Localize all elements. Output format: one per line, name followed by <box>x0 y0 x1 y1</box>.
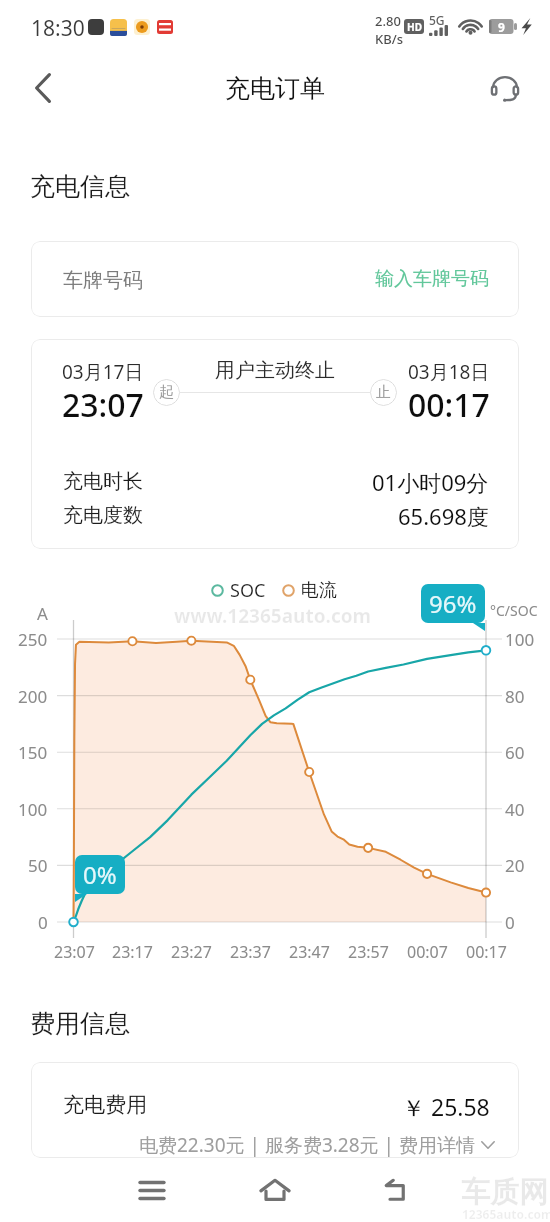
staticText: 充电费用 <box>63 1092 147 1118</box>
staticText: ￥ 25.58 <box>402 1091 490 1122</box>
staticText: 电费22.30元 | 服务费3.28元 | 费用详情 <box>139 1132 475 1158</box>
button[interactable]: Home <box>247 1162 303 1218</box>
staticText: 96% <box>429 587 477 620</box>
staticText: 01小时09分 <box>372 467 489 497</box>
staticText: SOC <box>230 578 266 602</box>
staticText: 0% <box>83 858 117 891</box>
staticText: 充电订单 <box>225 73 325 104</box>
staticText: 100 <box>505 628 535 651</box>
staticText: 23:07 <box>54 941 95 963</box>
staticText: 5G <box>429 12 445 28</box>
staticText: 23:37 <box>230 941 271 963</box>
staticText: 50 <box>28 854 48 877</box>
staticText: 电流 <box>301 579 337 602</box>
staticText: °C/SOC <box>490 601 538 620</box>
button[interactable]: 车牌号码 <box>31 241 519 317</box>
staticText: HD <box>407 20 422 34</box>
staticText: 250 <box>18 628 48 651</box>
staticText: 00:17 <box>408 383 490 427</box>
staticText: 23:47 <box>289 941 330 963</box>
staticText: 150 <box>18 741 48 764</box>
staticText: 00:17 <box>466 941 507 963</box>
staticText: KB/s <box>375 30 404 48</box>
staticText: 9 <box>498 19 505 34</box>
button[interactable]: Recent apps <box>124 1162 180 1218</box>
staticText: 03月17日 <box>62 359 144 385</box>
staticText: 0 <box>505 911 515 934</box>
staticText: 40 <box>505 798 525 821</box>
staticText: 200 <box>18 685 48 708</box>
button[interactable]: Back <box>369 1162 425 1218</box>
staticText: 23:57 <box>348 941 389 963</box>
staticText: 23:17 <box>112 941 153 963</box>
button[interactable]: Customer service <box>482 65 528 111</box>
staticText: 起 <box>159 383 174 402</box>
staticText: 23:27 <box>171 941 212 963</box>
button[interactable]: Back <box>20 65 66 111</box>
staticText: A <box>37 602 48 625</box>
staticText: 03月18日 <box>408 359 490 385</box>
staticText: 80 <box>505 685 525 708</box>
staticText: 100 <box>18 798 48 821</box>
staticText: 65.698度 <box>398 501 489 531</box>
staticText: 2.80 <box>375 12 401 30</box>
staticText: 充电时长 <box>63 469 143 494</box>
staticText: www.12365auto.com <box>174 603 372 629</box>
staticText: 18:30 <box>31 14 85 43</box>
staticText: 输入车牌号码 <box>375 267 489 291</box>
staticText: 12365auto.com <box>462 1206 550 1222</box>
staticText: 止 <box>376 383 391 402</box>
staticText: 用户主动终止 <box>215 358 335 383</box>
staticText: 车质网 <box>461 1174 548 1211</box>
staticText: 00:07 <box>407 941 448 963</box>
button[interactable]: 电费22.30元 | 服务费3.28元 | 费用详情 <box>139 1132 495 1158</box>
staticText: 0 <box>38 911 48 934</box>
staticText: 车牌号码 <box>63 268 143 293</box>
staticText: 60 <box>505 741 525 764</box>
staticText: 充电信息 <box>30 171 130 202</box>
staticText: 充电度数 <box>63 503 143 528</box>
staticText: 20 <box>505 854 525 877</box>
staticText: 费用信息 <box>30 1008 130 1039</box>
staticText: 23:07 <box>62 383 144 427</box>
